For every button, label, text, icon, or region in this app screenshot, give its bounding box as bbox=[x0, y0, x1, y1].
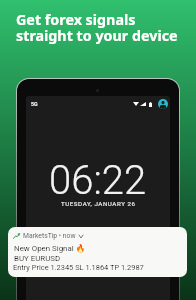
staticText: Entry Price 1.2345 SL 1.1864 TP 1.2987 bbox=[13, 263, 144, 272]
staticText: New Open Signal 🔥 bbox=[14, 244, 86, 253]
staticText: 5G bbox=[31, 101, 38, 107]
staticText: 06:22 bbox=[49, 157, 147, 204]
button[interactable]: Account bbox=[158, 99, 168, 109]
staticText: BUY EURUSD bbox=[14, 254, 61, 263]
staticText: MarketsTip • now bbox=[23, 232, 76, 240]
button[interactable]: MarketsTip • now bbox=[8, 227, 187, 277]
staticText: TUESDAY, JANUARY 26 bbox=[61, 200, 136, 207]
staticText: Get forex signals bbox=[16, 10, 136, 29]
staticText: straight to your device bbox=[16, 26, 178, 45]
